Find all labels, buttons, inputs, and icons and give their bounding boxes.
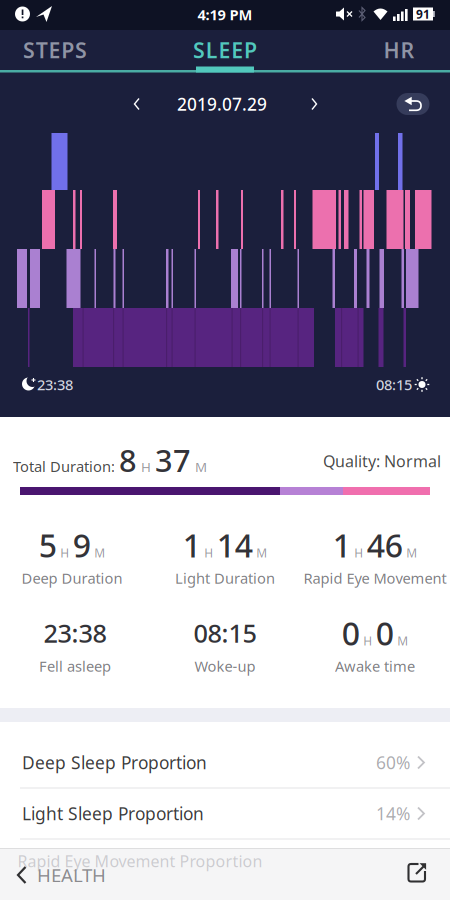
staticText: 60% bbox=[376, 751, 410, 774]
button[interactable]: Share bbox=[406, 861, 428, 883]
staticText: Woke-up bbox=[194, 656, 255, 676]
staticText: 08:15 bbox=[376, 375, 412, 394]
staticText: 5 bbox=[39, 524, 57, 566]
staticText: H bbox=[204, 545, 213, 561]
staticText: H bbox=[60, 545, 69, 561]
staticText: Deep Sleep Proportion bbox=[22, 751, 207, 774]
staticText: Awake time bbox=[335, 656, 415, 676]
staticText: 46 bbox=[367, 524, 403, 566]
staticText: SLEEP bbox=[193, 36, 257, 64]
staticText: 4:19 PM bbox=[197, 5, 252, 24]
staticText: Quality: bbox=[323, 450, 380, 472]
staticText: 14% bbox=[376, 802, 410, 825]
staticText: 1 bbox=[183, 524, 201, 566]
staticText: Normal bbox=[384, 450, 441, 472]
button[interactable]: Next day bbox=[307, 94, 321, 114]
staticText: Deep Duration bbox=[21, 568, 122, 588]
button[interactable]: SLEEP bbox=[170, 30, 280, 70]
staticText: HEALTH bbox=[37, 863, 106, 887]
staticText: 37 bbox=[155, 440, 191, 480]
staticText: 8 bbox=[119, 440, 137, 480]
staticText: H bbox=[363, 633, 372, 649]
staticText: 08:15 bbox=[193, 616, 256, 650]
button[interactable]: Reset date bbox=[396, 93, 429, 115]
button[interactable]: STEPS bbox=[0, 30, 110, 70]
staticText: Fell asleep bbox=[39, 656, 111, 676]
staticText: H bbox=[354, 545, 363, 561]
staticText: 1 bbox=[333, 524, 351, 566]
staticText: Total Duration: bbox=[13, 456, 115, 476]
staticText: Light Duration bbox=[175, 568, 275, 588]
staticText: 23:38 bbox=[43, 616, 106, 650]
staticText: 0 bbox=[342, 612, 360, 654]
staticText: M bbox=[406, 545, 417, 561]
button[interactable]: Previous day bbox=[130, 94, 144, 114]
staticText: 91 bbox=[416, 6, 430, 22]
staticText: 23:38 bbox=[37, 375, 73, 394]
button[interactable]: HR bbox=[354, 30, 444, 70]
button[interactable]: Deep Sleep Proportion bbox=[0, 737, 450, 788]
staticText: M bbox=[256, 545, 267, 561]
button[interactable]: Light Sleep Proportion bbox=[0, 788, 450, 839]
staticText: M bbox=[397, 633, 408, 649]
staticText: 0 bbox=[376, 612, 394, 654]
staticText: 9 bbox=[73, 524, 91, 566]
staticText: Light Sleep Proportion bbox=[22, 802, 204, 825]
staticText: Rapid Eye Movement Proportion bbox=[17, 850, 262, 872]
staticText: 14 bbox=[217, 524, 253, 566]
staticText: M bbox=[94, 545, 105, 561]
staticText: HR bbox=[384, 36, 414, 64]
staticText: 2019.07.29 bbox=[177, 92, 267, 115]
button[interactable]: Back to Health bbox=[16, 853, 132, 897]
staticText: STEPS bbox=[23, 36, 87, 64]
staticText: H bbox=[141, 458, 151, 476]
staticText: M bbox=[195, 458, 207, 476]
staticText: Rapid Eye Movement bbox=[303, 568, 446, 588]
